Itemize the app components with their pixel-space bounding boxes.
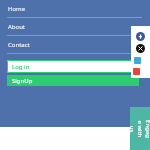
staticText: Engage with us [128, 119, 150, 139]
staticText: Home [8, 5, 26, 13]
button[interactable]: Log in [7, 60, 139, 73]
staticText: SignUp [12, 77, 33, 85]
staticText: Log in [12, 63, 30, 71]
button[interactable]: Facebook [136, 32, 145, 41]
button[interactable]: SignUp [7, 75, 139, 86]
button[interactable]: YouTube [133, 68, 140, 75]
button[interactable]: Home [0, 0, 150, 17]
button[interactable]: Contact [0, 36, 150, 53]
button[interactable]: Twitter [136, 44, 145, 53]
button[interactable]: Engage with us [130, 107, 150, 150]
button[interactable]: About [0, 18, 150, 35]
button[interactable]: LinkedIn [134, 57, 141, 64]
staticText: Contact [8, 41, 30, 49]
staticText: About [8, 23, 26, 31]
